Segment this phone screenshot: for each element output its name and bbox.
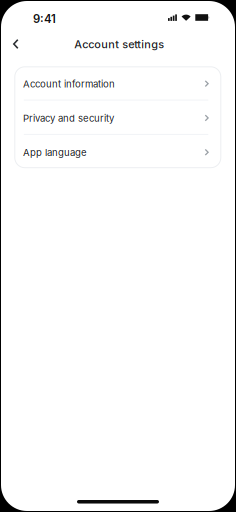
button[interactable]: Account information [14,66,221,100]
button[interactable]: Back [0,30,28,58]
staticText: Account information [23,78,115,90]
button[interactable]: Privacy and security [14,101,221,134]
staticText: 9:41 [33,12,56,26]
staticText: App language [23,147,87,158]
staticText: Privacy and security [23,112,114,124]
button[interactable]: App language [14,135,221,168]
staticText: Account settings [74,38,164,51]
